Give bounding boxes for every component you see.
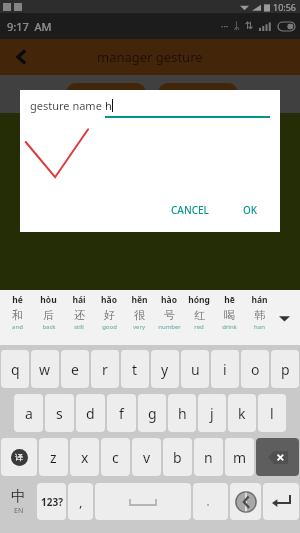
staticText: a <box>25 404 33 423</box>
staticText: w <box>39 360 51 379</box>
staticText: ᛦ <box>234 21 240 31</box>
button[interactable]: 。 <box>193 483 228 520</box>
staticText: 译 <box>15 452 23 462</box>
staticText: han <box>254 323 265 331</box>
staticText: b <box>173 448 182 467</box>
staticText: hào <box>161 294 177 306</box>
staticText: , <box>79 493 83 511</box>
button[interactable]: i <box>211 350 239 388</box>
staticText: 123? <box>41 495 63 509</box>
button[interactable]: Backspace <box>256 438 299 476</box>
staticText: m <box>233 448 247 467</box>
staticText: 后 <box>43 308 54 322</box>
staticText: u <box>191 360 200 379</box>
button[interactable]: m <box>225 438 254 476</box>
button[interactable]: Space <box>95 483 191 520</box>
button[interactable] <box>66 83 146 113</box>
button[interactable]: r <box>91 350 119 388</box>
button[interactable]: z <box>39 438 68 476</box>
button[interactable]: q <box>1 350 29 388</box>
staticText: CANCEL <box>171 203 209 217</box>
staticText: s <box>56 404 63 423</box>
button[interactable]: n <box>194 438 223 476</box>
staticText: back <box>42 323 56 331</box>
button[interactable]: x <box>70 438 99 476</box>
button[interactable]: u <box>181 350 209 388</box>
button[interactable]: w <box>31 350 59 388</box>
button[interactable]: hǎo <box>94 294 124 331</box>
button[interactable]: a <box>14 394 43 432</box>
button[interactable]: e <box>61 350 89 388</box>
button[interactable]: Enter <box>263 483 299 520</box>
button[interactable]: , <box>68 483 93 520</box>
staticText: good <box>102 323 117 331</box>
staticText: 韩 <box>254 308 265 322</box>
staticText: ··· <box>221 20 229 32</box>
button[interactable]: CANCEL <box>163 198 217 222</box>
staticText: g <box>148 404 157 423</box>
button[interactable]: o <box>241 350 269 388</box>
staticText: p <box>281 360 290 379</box>
staticText: number <box>158 323 181 331</box>
staticText: and <box>12 323 23 331</box>
staticText: hái <box>72 294 86 306</box>
staticText: hǎo <box>101 294 117 306</box>
staticText: h <box>178 404 187 423</box>
staticText: q <box>11 360 20 379</box>
button[interactable]: 译 <box>1 438 37 476</box>
button[interactable]: g <box>138 394 166 432</box>
staticText: c <box>112 448 119 467</box>
button[interactable]: Switch language <box>1 483 35 520</box>
button[interactable]: j <box>198 394 226 432</box>
button[interactable]: hòu <box>33 294 64 331</box>
staticText: hē <box>224 294 235 306</box>
button[interactable]: p <box>271 350 299 388</box>
button[interactable]: hěn <box>124 294 154 331</box>
button[interactable]: k <box>228 394 256 432</box>
button[interactable]: h <box>168 394 196 432</box>
button[interactable]: l <box>258 394 286 432</box>
button[interactable]: f <box>107 394 136 432</box>
staticText: 和 <box>12 308 23 322</box>
staticText: x <box>81 448 89 467</box>
button[interactable]: hē <box>214 294 244 331</box>
staticText: 还 <box>74 308 85 322</box>
staticText: n <box>204 448 213 467</box>
staticText: manager gesture <box>97 48 203 66</box>
staticText: f <box>119 404 124 423</box>
staticText: i <box>223 360 227 379</box>
button[interactable]: v <box>132 438 161 476</box>
button[interactable]: OK <box>235 198 266 222</box>
staticText: still <box>74 323 84 331</box>
staticText: l <box>270 404 274 423</box>
button[interactable]: hán <box>244 294 274 331</box>
staticText: t <box>132 360 138 379</box>
button[interactable]: hóng <box>184 294 214 331</box>
button[interactable]: d <box>76 394 105 432</box>
staticText: 。 <box>206 496 215 507</box>
button[interactable]: s <box>45 394 74 432</box>
staticText: gesture name <box>30 98 105 113</box>
button[interactable] <box>158 83 238 113</box>
button[interactable]: b <box>163 438 192 476</box>
button[interactable]: More candidates <box>274 308 294 328</box>
button[interactable]: hé <box>2 294 33 331</box>
button[interactable]: 123? <box>37 483 66 520</box>
button[interactable]: Voice input <box>230 483 261 520</box>
staticText: 号 <box>164 308 175 322</box>
staticText: e <box>71 360 79 379</box>
staticText: very <box>133 323 145 331</box>
staticText: z <box>50 448 57 467</box>
button[interactable]: Back <box>8 43 36 71</box>
staticText: 9:17 AM <box>7 19 52 34</box>
button[interactable]: y <box>151 350 179 388</box>
staticText: r <box>102 360 108 379</box>
button[interactable]: c <box>101 438 130 476</box>
staticText: v <box>143 448 151 467</box>
button[interactable]: hái <box>64 294 94 331</box>
staticText: j <box>210 404 214 423</box>
button[interactable]: hào <box>154 294 184 331</box>
staticText: hěn <box>131 294 148 306</box>
staticText: drink <box>222 323 237 331</box>
button[interactable]: t <box>121 350 149 388</box>
